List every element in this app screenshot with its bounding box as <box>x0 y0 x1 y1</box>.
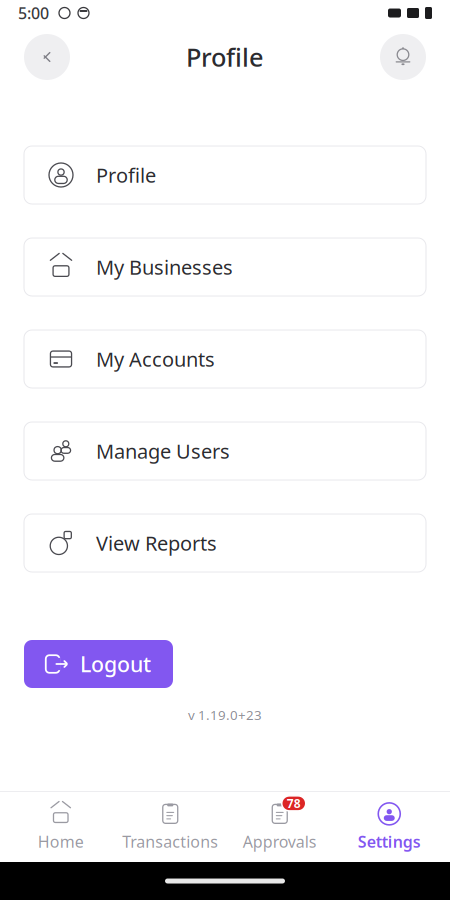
button[interactable]: Manage Users <box>24 422 426 480</box>
button[interactable]: My Businesses <box>24 238 426 296</box>
staticText: Home <box>38 831 84 852</box>
button[interactable]: Profile <box>24 146 426 204</box>
button[interactable]: 78 <box>225 798 334 856</box>
staticText: Approvals <box>243 831 317 852</box>
staticText: 78 <box>287 795 301 811</box>
button[interactable]: Home <box>6 798 115 856</box>
staticText: My Accounts <box>96 346 215 372</box>
button[interactable]: Logout <box>24 640 173 688</box>
staticText: Settings <box>358 831 421 852</box>
staticText: Profile <box>186 40 264 74</box>
staticText: Profile <box>96 162 156 188</box>
staticText: View Reports <box>96 530 217 556</box>
button[interactable]: Transactions <box>115 798 225 856</box>
staticText: Transactions <box>122 831 218 852</box>
button[interactable]: Back <box>24 34 70 80</box>
button[interactable]: Settings <box>334 798 444 856</box>
staticText: My Businesses <box>96 254 233 280</box>
button[interactable]: Notifications <box>380 34 426 80</box>
button[interactable]: View Reports <box>24 514 426 572</box>
staticText: Manage Users <box>96 438 230 464</box>
staticText: v 1.19.0+23 <box>188 706 262 724</box>
staticText: 5:00 <box>18 2 49 24</box>
button[interactable]: My Accounts <box>24 330 426 388</box>
staticText: Logout <box>80 650 151 678</box>
